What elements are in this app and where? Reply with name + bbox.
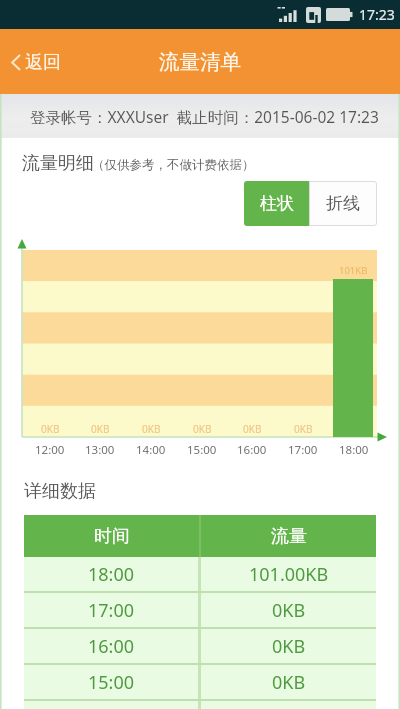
staticText: 16:00 xyxy=(237,442,267,458)
staticText: 0KB xyxy=(272,634,306,659)
staticText: 柱状 xyxy=(260,193,294,214)
staticText: 0KB xyxy=(91,422,110,436)
staticText: 0KB xyxy=(243,422,262,436)
button[interactable]: 柱状 xyxy=(244,181,309,226)
staticText: 12:00 xyxy=(35,442,65,458)
staticText: 13:00 xyxy=(85,442,115,458)
staticText: 流量清单 xyxy=(159,49,241,75)
staticText: 15:00 xyxy=(187,442,217,458)
staticText: 17:23 xyxy=(359,5,395,24)
staticText: 流量明细 xyxy=(22,152,94,175)
staticText: 0KB xyxy=(294,422,313,436)
staticText: 101KB xyxy=(339,264,368,277)
staticText: 0KB xyxy=(272,598,306,623)
button[interactable]: 返回 xyxy=(0,38,75,86)
staticText: 18:00 xyxy=(88,562,135,587)
staticText: 101.00KB xyxy=(249,562,329,587)
staticText: 0KB xyxy=(41,422,60,436)
staticText: 0KB xyxy=(193,422,212,436)
staticText: 15:00 xyxy=(88,670,135,695)
staticText: 返回 xyxy=(25,51,61,74)
button[interactable]: 15:00 xyxy=(24,665,376,699)
staticText: 时间 xyxy=(94,525,130,548)
staticText: 登录帐号：XXXUser 截止时间：2015-06-02 17:23 xyxy=(30,106,379,127)
staticText: 14:00 xyxy=(136,442,166,458)
staticText: 0KB xyxy=(272,670,306,695)
button[interactable]: 18:00 xyxy=(24,557,376,591)
button[interactable]: 14:00 xyxy=(24,701,376,709)
staticText: 18:00 xyxy=(339,442,369,458)
button[interactable]: 17:00 xyxy=(24,593,376,627)
staticText: 详细数据 xyxy=(24,480,96,503)
staticText: 17:00 xyxy=(288,442,318,458)
button[interactable]: 折线 xyxy=(309,181,377,226)
staticText: （仅供参考，不做计费依据） xyxy=(92,157,255,173)
staticText: 流量 xyxy=(271,525,307,548)
staticText: 16:00 xyxy=(88,634,135,659)
staticText: 0KB xyxy=(142,422,161,436)
staticText: 17:00 xyxy=(88,598,135,623)
button[interactable]: 16:00 xyxy=(24,629,376,663)
staticText: 折线 xyxy=(326,193,360,214)
